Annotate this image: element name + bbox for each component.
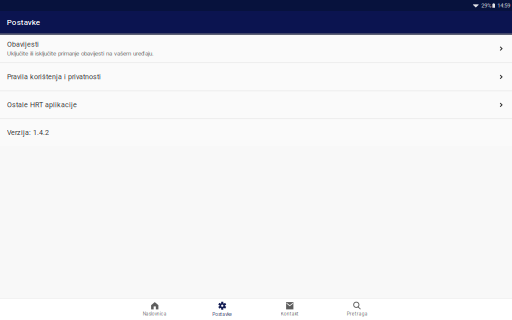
staticText: Postavke (212, 311, 232, 317)
staticText: Uključite ili isključite primanje obavij… (7, 50, 154, 57)
staticText: Ostale HRT aplikacije (7, 101, 77, 109)
staticText: Verzija: 1.4.2 (7, 129, 49, 137)
button[interactable]: Naslovnica (121, 299, 188, 320)
button[interactable]: Ostale HRT aplikacije (0, 91, 512, 118)
staticText: Pretraga (347, 311, 368, 317)
staticText: Kontakt (281, 311, 299, 317)
staticText: Postavke (7, 18, 40, 27)
staticText: 29% (481, 2, 491, 9)
staticText: Naslovnica (143, 311, 167, 317)
staticText: Pravila korištenja i privatnosti (7, 73, 101, 81)
button[interactable]: Kontakt (256, 299, 323, 320)
button[interactable]: Verzija: 1.4.2 (0, 119, 512, 146)
button[interactable]: Pretraga (323, 299, 391, 320)
button[interactable]: Postavke (188, 299, 256, 320)
button[interactable]: Obavijesti (0, 35, 512, 62)
staticText: Obavijesti (7, 40, 39, 48)
staticText: 14:59 (497, 2, 510, 9)
button[interactable]: Pravila korištenja i privatnosti (0, 63, 512, 91)
